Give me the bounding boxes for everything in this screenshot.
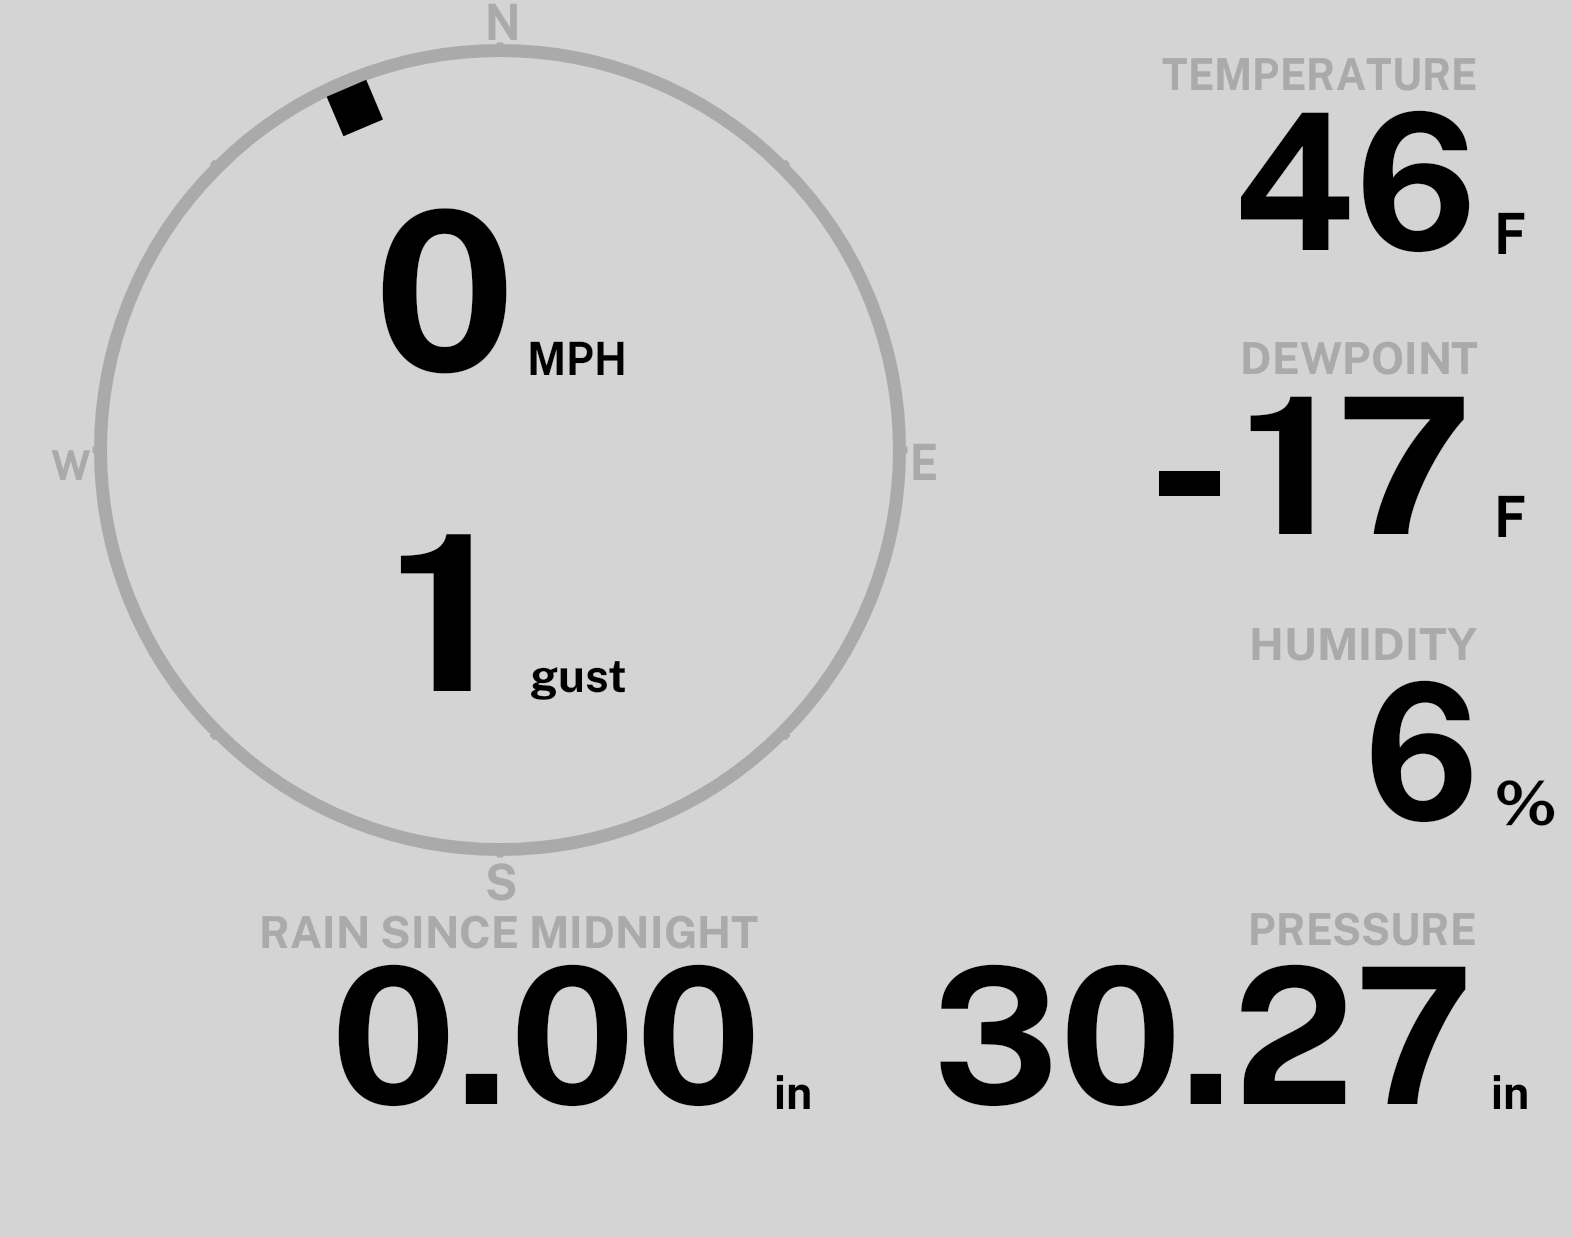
button[interactable]: Rain since midnight 0.00 inches bbox=[250, 900, 830, 1115]
button[interactable]: Dewpoint -17 F bbox=[1130, 320, 1550, 555]
button[interactable]: Wind speed and direction compass bbox=[88, 38, 924, 874]
button[interactable]: Temperature 46 F bbox=[1130, 40, 1550, 270]
button[interactable]: Pressure 30.27 inches bbox=[930, 900, 1540, 1115]
button[interactable]: Humidity 6 percent bbox=[1130, 610, 1550, 840]
